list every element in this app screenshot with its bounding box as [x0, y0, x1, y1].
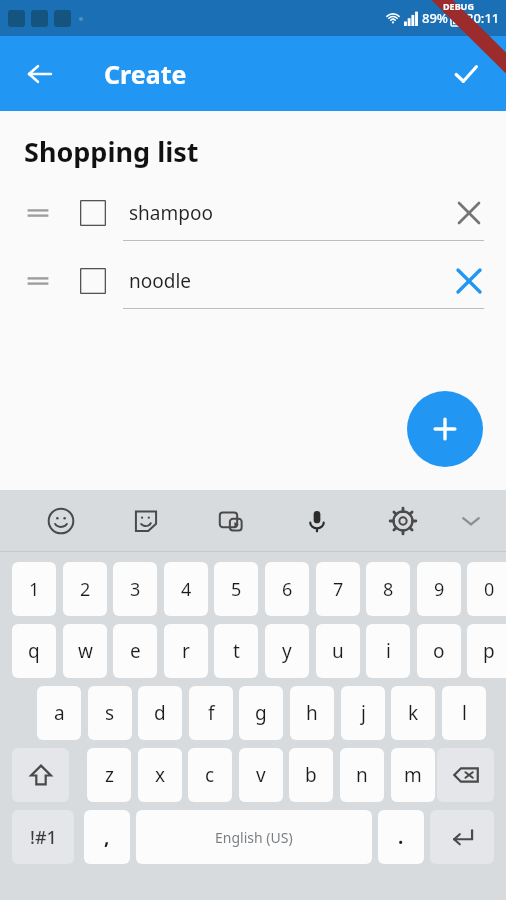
button[interactable]: 0	[467, 562, 506, 616]
button[interactable]: Reorder shampoo	[22, 197, 54, 229]
button[interactable]: w	[63, 624, 107, 678]
button[interactable]: Reorder shampoo	[0, 186, 506, 240]
button[interactable]: Backspace	[437, 748, 494, 802]
staticText: z	[105, 762, 114, 788]
button[interactable]: Keyboard settings	[360, 494, 446, 548]
staticText: d	[154, 700, 166, 726]
button[interactable]: b	[289, 748, 333, 802]
button[interactable]: a	[37, 686, 81, 740]
staticText: 4	[181, 577, 192, 602]
button[interactable]: e	[113, 624, 157, 678]
button[interactable]: Hide keyboard	[446, 494, 496, 548]
button[interactable]: z	[87, 748, 131, 802]
button[interactable]: 7	[316, 562, 360, 616]
staticText: m	[404, 762, 422, 788]
staticText: 20:11	[466, 9, 500, 27]
button[interactable]: GIF	[188, 494, 274, 548]
button[interactable]: Stickers	[103, 494, 188, 548]
button[interactable]: 1	[12, 562, 56, 616]
button[interactable]: u	[316, 624, 360, 678]
staticText: c	[205, 762, 215, 788]
button[interactable]: Check noodle	[76, 264, 110, 298]
staticText: y	[282, 638, 292, 664]
button[interactable]: f	[189, 686, 233, 740]
button[interactable]: q	[12, 624, 56, 678]
staticText: l	[462, 700, 467, 726]
staticText: Create	[104, 57, 187, 91]
staticText: English (US)	[215, 828, 293, 847]
staticText: 0	[484, 577, 495, 602]
button[interactable]: o	[417, 624, 461, 678]
button[interactable]: 8	[366, 562, 410, 616]
button[interactable]: m	[391, 748, 435, 802]
button[interactable]: k	[391, 686, 435, 740]
button[interactable]: Emoji	[18, 494, 103, 548]
staticText: 1	[29, 577, 40, 602]
staticText: 89%	[422, 9, 448, 27]
button[interactable]: Back	[16, 50, 64, 98]
button[interactable]: Enter	[430, 810, 494, 864]
staticText: 6	[282, 577, 293, 602]
button[interactable]: Save	[442, 50, 490, 98]
button[interactable]: Reorder noodle	[0, 254, 506, 308]
button[interactable]: 4	[164, 562, 208, 616]
button[interactable]: t	[214, 624, 258, 678]
button[interactable]: Delete noodle	[448, 260, 490, 302]
staticText: shampoo	[129, 200, 448, 226]
button[interactable]: ,	[84, 810, 130, 864]
button[interactable]: h	[290, 686, 334, 740]
button[interactable]: Delete shampoo	[448, 192, 490, 234]
button[interactable]: n	[340, 748, 384, 802]
button[interactable]: 5	[214, 562, 258, 616]
staticText: o	[433, 638, 445, 664]
staticText: k	[408, 700, 419, 726]
button[interactable]: Add item	[407, 391, 483, 467]
button[interactable]: .	[378, 810, 424, 864]
button[interactable]: x	[138, 748, 182, 802]
button[interactable]: i	[366, 624, 410, 678]
button[interactable]: r	[164, 624, 208, 678]
button[interactable]: !#1	[12, 810, 74, 864]
staticText: 9	[434, 577, 445, 602]
button[interactable]: d	[138, 686, 182, 740]
staticText: a	[54, 700, 65, 726]
button[interactable]: y	[265, 624, 309, 678]
staticText: t	[233, 638, 240, 664]
button[interactable]: s	[88, 686, 132, 740]
button[interactable]: Check shampoo	[76, 196, 110, 230]
staticText: j	[361, 700, 366, 726]
staticText: u	[332, 638, 344, 664]
button[interactable]: English (US)	[136, 810, 372, 864]
button[interactable]: 2	[63, 562, 107, 616]
staticText: DEBUG	[443, 0, 474, 12]
button[interactable]: Shift	[12, 748, 69, 802]
staticText: x	[155, 762, 166, 788]
button[interactable]: c	[188, 748, 232, 802]
button[interactable]: v	[239, 748, 283, 802]
staticText: i	[386, 638, 391, 664]
staticText: 3	[130, 577, 141, 602]
button[interactable]: p	[467, 624, 506, 678]
staticText: !#1	[30, 825, 57, 850]
staticText: w	[78, 638, 93, 664]
staticText: h	[306, 700, 318, 726]
staticText: noodle	[129, 268, 448, 294]
staticText: q	[28, 638, 40, 664]
button[interactable]: 6	[265, 562, 309, 616]
staticText: 8	[383, 577, 394, 602]
button[interactable]: Voice input	[274, 494, 360, 548]
button[interactable]: j	[341, 686, 385, 740]
button[interactable]: 3	[113, 562, 157, 616]
staticText: f	[208, 700, 215, 726]
button[interactable]: l	[442, 686, 486, 740]
staticText: e	[130, 638, 141, 664]
staticText: p	[483, 638, 495, 664]
staticText: 7	[333, 577, 344, 602]
button[interactable]: 9	[417, 562, 461, 616]
staticText: n	[356, 762, 368, 788]
button[interactable]: Reorder noodle	[22, 265, 54, 297]
staticText: 2	[80, 577, 91, 602]
staticText: .	[398, 824, 404, 850]
button[interactable]: g	[239, 686, 283, 740]
staticText: ,	[104, 824, 110, 850]
